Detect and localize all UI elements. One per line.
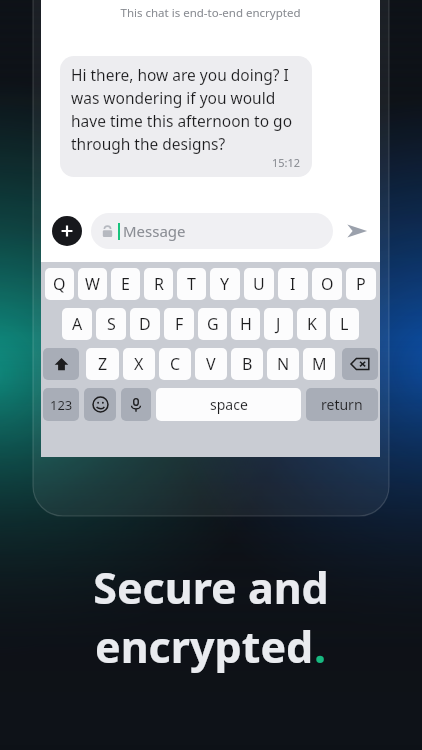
button[interactable]: D — [130, 308, 160, 340]
button[interactable]: Voice input — [121, 388, 151, 421]
staticText: encrypted — [95, 617, 314, 676]
button[interactable]: N — [267, 348, 299, 380]
staticText: Z — [98, 353, 108, 375]
staticText: return — [321, 395, 363, 414]
button[interactable]: Hi there, how are you doing? I was wonde… — [60, 56, 312, 177]
staticText: This chat is end-to-end encrypted — [41, 5, 380, 21]
staticText: L — [340, 313, 349, 335]
button[interactable]: Emoji — [84, 388, 116, 421]
button[interactable]: Send — [339, 213, 375, 249]
staticText: space — [210, 395, 248, 414]
staticText: T — [187, 273, 196, 295]
staticText: P — [356, 273, 366, 295]
staticText: 123 — [50, 396, 73, 414]
staticText: C — [170, 353, 181, 375]
staticText: D — [139, 313, 151, 335]
button[interactable]: Shift — [43, 348, 79, 380]
staticText: X — [134, 353, 144, 375]
staticText: Secure and — [93, 558, 329, 617]
staticText: H — [240, 313, 252, 335]
button[interactable]: T — [177, 268, 206, 300]
button[interactable]: O — [312, 268, 342, 300]
staticText: K — [307, 313, 317, 335]
button[interactable]: Y — [210, 268, 240, 300]
button[interactable]: I — [278, 268, 308, 300]
staticText: . — [314, 617, 327, 676]
staticText: S — [107, 313, 116, 335]
staticText: J — [276, 313, 281, 335]
button[interactable]: space — [156, 388, 301, 421]
button[interactable]: P — [346, 268, 376, 300]
button[interactable]: E — [111, 268, 140, 300]
button[interactable]: return — [306, 388, 378, 421]
button[interactable]: J — [264, 308, 293, 340]
button[interactable]: G — [198, 308, 227, 340]
button[interactable]: H — [231, 308, 260, 340]
button[interactable]: U — [244, 268, 274, 300]
button[interactable]: R — [144, 268, 173, 300]
staticText: F — [175, 313, 184, 335]
staticText: Hi there, how are you doing? I was wonde… — [71, 64, 301, 155]
staticText: O — [321, 273, 334, 295]
staticText: Message — [123, 221, 186, 241]
button[interactable]: V — [195, 348, 227, 380]
staticText: I — [290, 273, 296, 295]
button[interactable]: Backspace — [342, 348, 378, 380]
button[interactable]: F — [164, 308, 194, 340]
button[interactable]: K — [297, 308, 326, 340]
button[interactable]: Q — [45, 268, 74, 300]
button[interactable]: X — [123, 348, 155, 380]
staticText: W — [85, 273, 100, 295]
staticText: N — [277, 353, 290, 375]
button[interactable]: B — [231, 348, 263, 380]
staticText: U — [253, 273, 265, 295]
button[interactable]: C — [159, 348, 191, 380]
button[interactable]: Message — [91, 213, 333, 249]
button[interactable]: L — [330, 308, 359, 340]
staticText: Y — [220, 273, 230, 295]
staticText: B — [242, 353, 253, 375]
staticText: Q — [53, 273, 66, 295]
staticText: V — [206, 353, 216, 375]
staticText: 15:12 — [272, 155, 301, 170]
button[interactable]: M — [303, 348, 335, 380]
button[interactable]: Z — [86, 348, 119, 380]
button[interactable]: Add attachment — [52, 216, 82, 246]
staticText: G — [207, 313, 219, 335]
staticText: E — [121, 273, 130, 295]
staticText: M — [312, 353, 327, 375]
button[interactable]: 123 — [43, 388, 79, 421]
button[interactable]: A — [62, 308, 92, 340]
button[interactable]: W — [78, 268, 107, 300]
staticText: A — [72, 313, 83, 335]
staticText: R — [154, 273, 164, 295]
button[interactable]: S — [96, 308, 126, 340]
